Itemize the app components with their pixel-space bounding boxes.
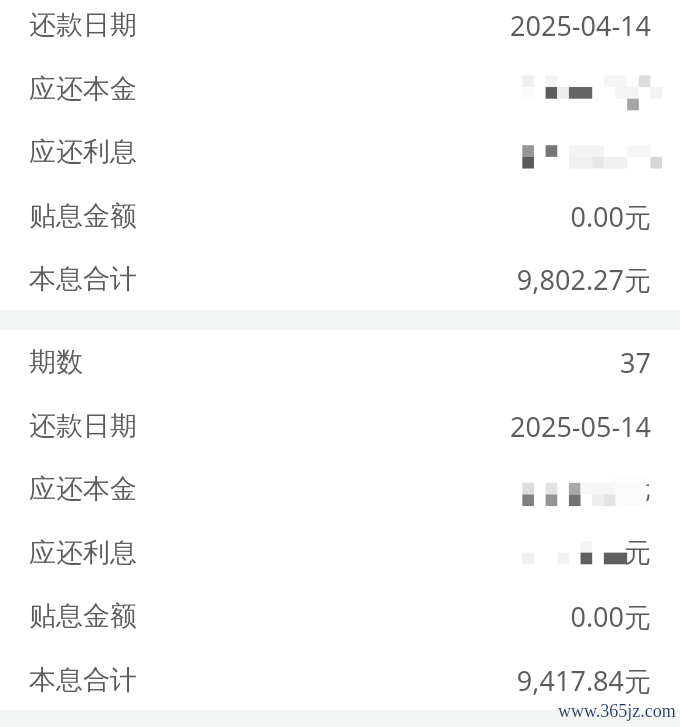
button[interactable]: 本息合计	[0, 648, 680, 712]
staticText: 应还利息	[29, 135, 137, 169]
button[interactable]: 应还利息	[0, 120, 680, 184]
staticText: 0.00元	[570, 598, 651, 635]
button[interactable]: 应还本金	[0, 457, 680, 521]
staticText: 应还利息	[29, 536, 137, 570]
staticText: 本息合计	[29, 663, 137, 697]
staticText: 2025-05-14	[510, 408, 651, 445]
staticText: 还款日期	[29, 8, 137, 42]
staticText: 9,417.84元	[516, 662, 651, 699]
button[interactable]: 应还利息	[0, 521, 680, 585]
staticText: 本息合计	[29, 262, 137, 296]
staticText: 应还本金	[29, 72, 137, 106]
button[interactable]: 还款日期	[0, 0, 680, 57]
button[interactable]: 贴息金额	[0, 184, 680, 248]
staticText: www.365jz.com	[558, 701, 676, 721]
staticText: 9,802.27元	[516, 261, 651, 298]
button[interactable]: 本息合计	[0, 247, 680, 311]
staticText: 贴息金额	[29, 599, 137, 633]
staticText: 0.00元	[570, 198, 651, 235]
staticText: 元	[624, 472, 651, 506]
staticText: 37	[620, 344, 651, 381]
staticText: 贴息金额	[29, 199, 137, 233]
staticText: 还款日期	[29, 409, 137, 443]
button[interactable]: 期数	[0, 330, 680, 394]
staticText: 2025-04-14	[510, 7, 651, 44]
button[interactable]: 贴息金额	[0, 584, 680, 648]
staticText: 元	[624, 536, 651, 570]
staticText: 期数	[29, 345, 83, 379]
button[interactable]: 还款日期	[0, 394, 680, 458]
staticText: 应还本金	[29, 472, 137, 506]
button[interactable]: 应还本金	[0, 57, 680, 121]
